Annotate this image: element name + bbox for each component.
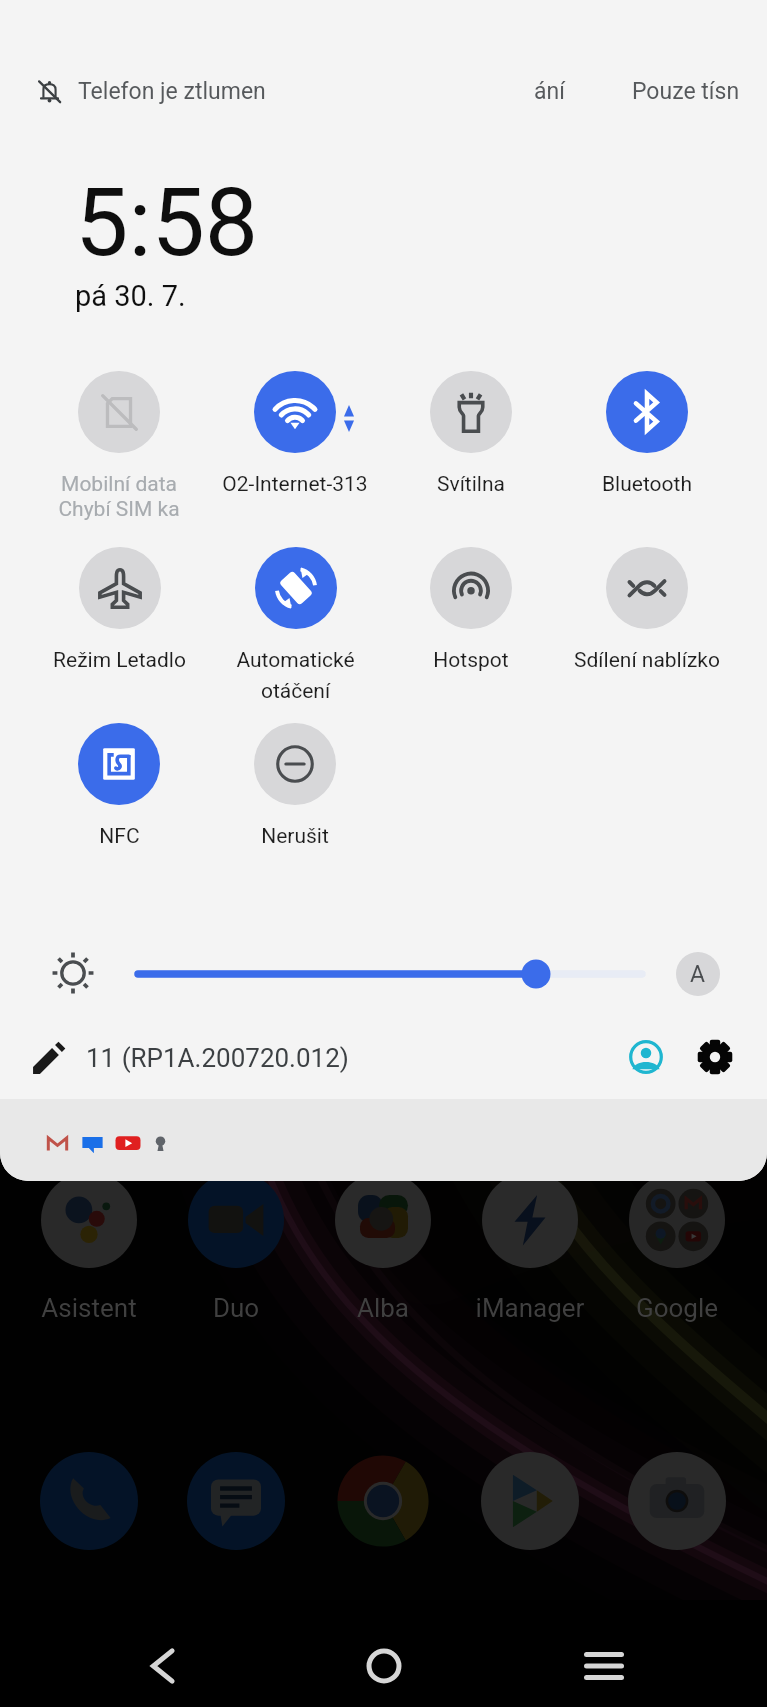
button[interactable] <box>481 1452 579 1550</box>
button[interactable]: Bluetooth <box>559 371 735 531</box>
button[interactable]: Account <box>629 1040 663 1074</box>
button[interactable]: Sdílení nablízko <box>559 547 735 707</box>
button[interactable] <box>628 1452 726 1550</box>
staticText: Svítilna <box>437 472 505 497</box>
button[interactable] <box>187 1452 285 1550</box>
button[interactable] <box>604 1172 750 1327</box>
button[interactable]: Automatické otáčení <box>207 547 383 707</box>
button[interactable]: Nerušit <box>207 723 383 883</box>
button[interactable] <box>334 1452 432 1550</box>
button[interactable]: Mobilní data <box>31 371 207 531</box>
button[interactable] <box>16 1172 162 1327</box>
button[interactable] <box>163 1172 309 1327</box>
button[interactable]: 5:58 <box>75 167 259 312</box>
button[interactable]: Messages <box>81 1132 104 1155</box>
button[interactable]: Gmail <box>46 1132 69 1155</box>
staticText: Pouze tísn <box>632 78 740 105</box>
button[interactable] <box>40 1452 138 1550</box>
staticText: Automatické otáčení <box>236 648 355 703</box>
staticText: Režim Letadlo <box>53 648 186 673</box>
staticText: 5:58 <box>75 167 259 278</box>
button[interactable]: Svítilna <box>383 371 559 531</box>
button[interactable]: YouTube <box>115 1130 141 1156</box>
button[interactable]: Ringer muted <box>36 78 63 105</box>
button[interactable]: Brightness <box>133 958 647 990</box>
button[interactable]: Back <box>122 1626 202 1706</box>
staticText: Telefon je ztlumen <box>78 78 266 105</box>
staticText: 11 (RP1A.200720.012) <box>86 1043 349 1073</box>
staticText: NFC <box>99 824 140 849</box>
staticText: ání <box>534 78 565 105</box>
button[interactable]: NFC <box>31 723 207 883</box>
button[interactable]: VPN <box>151 1134 170 1153</box>
button[interactable]: Home <box>344 1626 424 1706</box>
staticText: Chybí SIM ka <box>58 497 180 522</box>
staticText: Sdílení nablízko <box>574 648 720 673</box>
staticText: A <box>690 961 706 988</box>
staticText: Nerušit <box>261 824 329 849</box>
button[interactable]: Hotspot <box>383 547 559 707</box>
button[interactable]: Režim Letadlo <box>31 547 207 707</box>
button[interactable]: Edit <box>30 1039 68 1077</box>
button[interactable]: Settings <box>697 1039 733 1075</box>
staticText: Hotspot <box>433 648 509 673</box>
staticText: Mobilní data <box>61 472 177 497</box>
button[interactable]: A <box>676 952 720 996</box>
button[interactable]: O2-Internet-313 <box>207 371 383 531</box>
button[interactable]: Recents <box>564 1626 644 1706</box>
staticText: Google <box>604 1293 750 1323</box>
staticText: O2-Internet-313 <box>222 472 368 497</box>
staticText: Asistent <box>16 1293 162 1323</box>
button[interactable] <box>457 1172 603 1327</box>
staticText: pá 30. 7. <box>75 279 186 313</box>
button[interactable]: Wi-Fi details <box>344 405 354 432</box>
staticText: Bluetooth <box>602 472 692 497</box>
staticText: Alba <box>310 1293 456 1323</box>
staticText: iManager <box>457 1293 603 1323</box>
button[interactable] <box>310 1172 456 1327</box>
staticText: Duo <box>163 1293 309 1323</box>
